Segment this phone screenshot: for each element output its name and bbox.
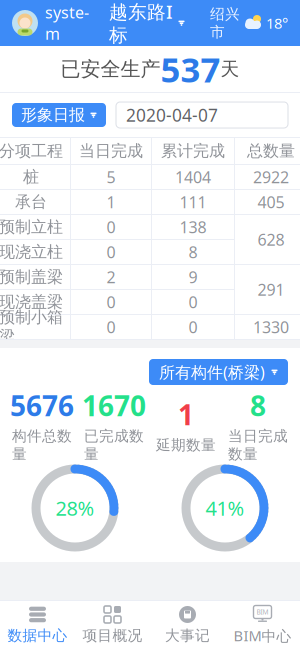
staticText: system [45, 2, 89, 44]
staticText: 8 [250, 387, 266, 424]
staticText: 2 [106, 266, 115, 288]
staticText: 延期数量 [156, 436, 216, 454]
staticText: 0 [188, 316, 197, 338]
staticText: 构件总数量 [12, 427, 72, 463]
button[interactable]: 2020-04-07 [116, 102, 288, 128]
staticText: BIM [256, 608, 268, 616]
staticText: 所有构件(桥梁) [159, 361, 265, 383]
staticText: 已安全生产 [60, 57, 160, 81]
staticText: 预制盖梁 [0, 267, 63, 287]
staticText: 0 [106, 291, 115, 313]
button[interactable]: 数据中心 [0, 601, 75, 649]
staticText: 5676 [10, 387, 74, 424]
button[interactable]: 所有构件(桥梁) [149, 359, 288, 385]
staticText: 537 [160, 46, 220, 92]
staticText: 0 [106, 241, 115, 263]
staticText: 桩 [23, 167, 39, 187]
staticText: 2922 [253, 166, 289, 188]
staticText: 41% [205, 495, 244, 521]
button[interactable]: system [12, 2, 89, 44]
staticText: 1 [106, 191, 115, 213]
staticText: 预制小箱梁 [0, 307, 63, 347]
button[interactable]: 大事记 [150, 601, 225, 649]
staticText: 天 [220, 57, 239, 80]
staticText: 1 [178, 396, 194, 433]
staticText: 当日完成 [79, 141, 143, 161]
button[interactable]: 项目概况 [75, 601, 150, 649]
staticText: 数据中心 [7, 626, 67, 644]
staticText: 0 [188, 291, 197, 313]
staticText: 291 [257, 279, 284, 300]
staticText: 已完成数量 [84, 427, 144, 463]
staticText: 2020-04-07 [126, 103, 218, 126]
staticText: 预制立柱 [0, 217, 63, 237]
staticText: 8 [188, 241, 197, 263]
staticText: 0 [106, 316, 115, 338]
staticText: 0 [106, 216, 115, 238]
staticText: 累计完成 [161, 141, 225, 161]
staticText: 越东路I标 [109, 0, 173, 47]
staticText: 5 [106, 166, 115, 188]
staticText: 405 [257, 191, 284, 213]
staticText: 111 [179, 191, 206, 213]
staticText: 项目概况 [82, 626, 142, 644]
staticText: 1404 [175, 166, 211, 188]
button[interactable]: BIM [225, 601, 300, 649]
staticText: 现浇立柱 [0, 242, 63, 262]
staticText: 1670 [82, 387, 146, 424]
staticText: BIM中心 [233, 626, 291, 645]
staticText: 总数量 [247, 141, 295, 161]
staticText: 现浇盖梁 [0, 292, 63, 312]
staticText: 当日完成数量 [228, 427, 288, 463]
staticText: 9 [188, 266, 197, 288]
button[interactable]: 形象日报 [12, 103, 106, 127]
staticText: 28% [55, 495, 94, 521]
staticText: 承台 [15, 192, 47, 212]
staticText: 分项工程 [0, 141, 63, 161]
staticText: 138 [179, 216, 206, 238]
staticText: 1330 [253, 316, 289, 338]
staticText: 18° [266, 13, 288, 33]
staticText: 绍兴市 [210, 5, 240, 41]
staticText: 大事记 [165, 626, 210, 644]
staticText: 628 [257, 229, 284, 250]
button[interactable]: 越东路I标 [109, 0, 185, 47]
staticText: 形象日报 [21, 105, 85, 125]
